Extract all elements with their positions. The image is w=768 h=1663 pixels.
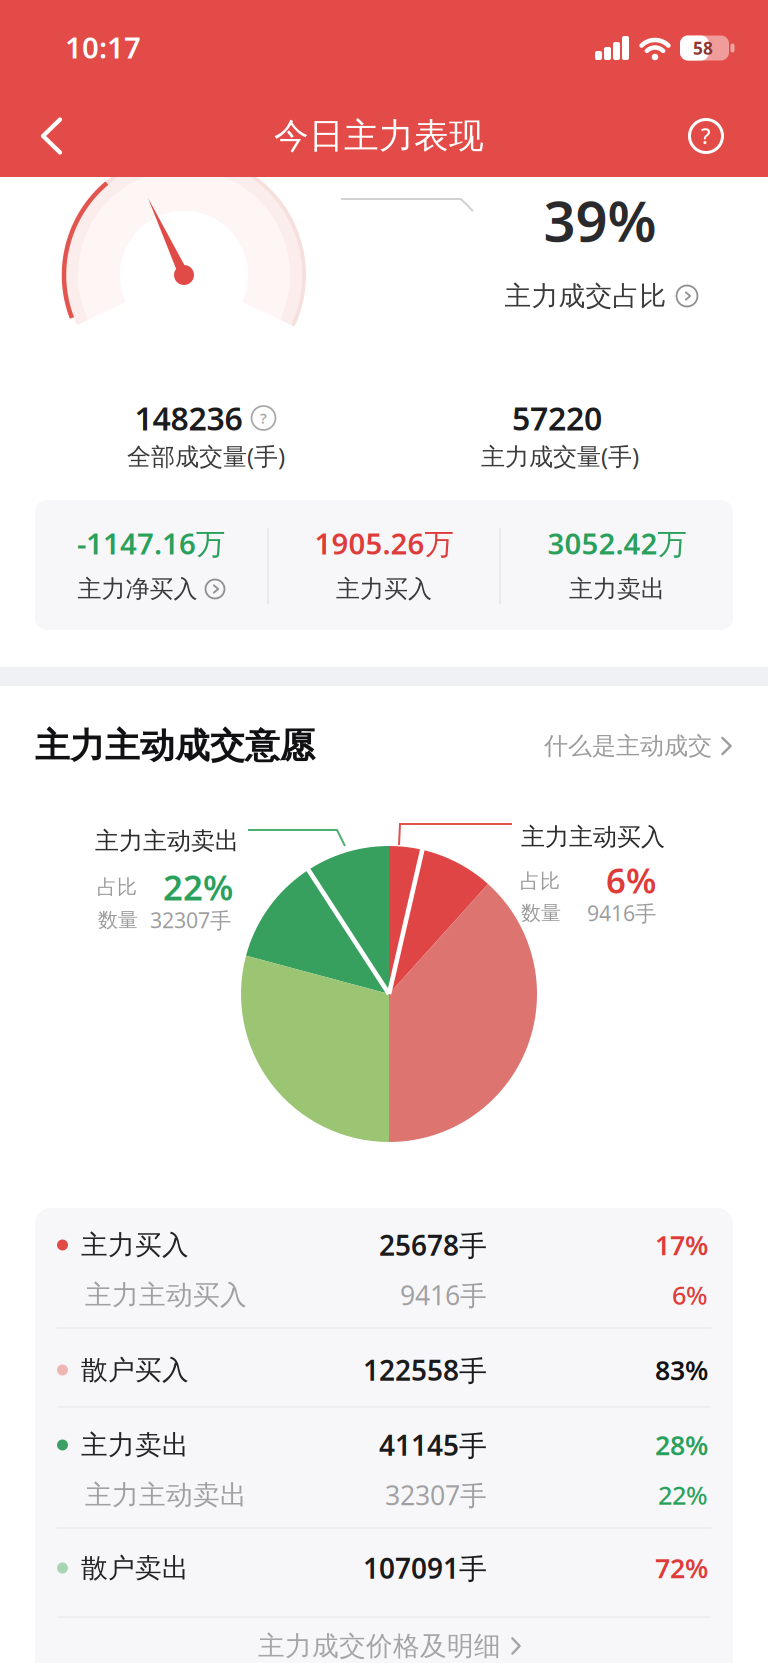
staticText: ?	[260, 408, 267, 428]
staticText: 什么是主动成交	[544, 731, 712, 761]
button[interactable]: 主力成交占比	[504, 280, 697, 312]
button[interactable]: 什么是主动成交	[544, 731, 733, 761]
staticText: 9416手	[400, 1277, 487, 1313]
staticText: 25678手	[379, 1226, 487, 1264]
staticText: 主力成交价格及明细	[258, 1630, 501, 1662]
staticText: 散户买入	[81, 1354, 189, 1386]
staticText: 主力主动成交意愿	[35, 725, 315, 767]
staticText: 28%	[655, 1427, 708, 1463]
staticText: 107091手	[363, 1549, 487, 1587]
staticText: 22%	[163, 864, 233, 910]
staticText: 22%	[658, 1478, 708, 1512]
staticText: 58	[693, 36, 713, 59]
staticText: 6%	[606, 857, 656, 903]
staticText: 主力买入	[81, 1229, 189, 1261]
staticText: ?	[701, 122, 711, 150]
button[interactable]	[40, 116, 64, 155]
staticText: -1147.16万	[77, 523, 225, 562]
staticText: 主力成交占比	[504, 280, 666, 312]
button[interactable]: 148236	[134, 397, 275, 439]
staticText: 3052.42万	[547, 523, 686, 562]
button[interactable]: ?	[689, 119, 722, 152]
staticText: 122558手	[363, 1351, 487, 1389]
button[interactable]: 主力成交价格及明细	[258, 1630, 522, 1662]
staticText: 数量	[521, 901, 561, 925]
staticText: 83%	[655, 1352, 708, 1388]
staticText: 主力成交量(手)	[481, 440, 639, 472]
staticText: 主力买入	[336, 574, 432, 604]
button[interactable]: 主力净买入	[77, 574, 224, 604]
staticText: 主力卖出	[81, 1429, 189, 1461]
staticText: 41145手	[379, 1426, 487, 1464]
staticText: 主力主动卖出	[95, 826, 239, 856]
staticText: 39%	[543, 183, 656, 257]
staticText: 今日主力表现	[274, 115, 484, 157]
staticText: 10:17	[65, 27, 141, 66]
staticText: 17%	[655, 1227, 708, 1263]
staticText: 主力主动卖出	[85, 1479, 247, 1511]
staticText: 散户卖出	[81, 1552, 189, 1584]
staticText: 主力卖出	[569, 574, 665, 604]
staticText: 主力主动买入	[85, 1279, 247, 1311]
staticText: 32307手	[150, 906, 231, 934]
staticText: 1905.26万	[314, 523, 453, 562]
staticText: 占比	[520, 869, 560, 893]
staticText: 6%	[672, 1278, 708, 1312]
staticText: 9416手	[587, 899, 656, 927]
staticText: 32307手	[385, 1477, 487, 1513]
staticText: 全部成交量(手)	[127, 440, 285, 472]
staticText: 72%	[655, 1550, 708, 1586]
staticText: 主力净买入	[77, 574, 197, 604]
staticText: 占比	[97, 875, 137, 899]
staticText: 148236	[134, 397, 242, 439]
staticText: 57220	[512, 397, 602, 439]
staticText: 主力主动买入	[521, 822, 665, 852]
staticText: 数量	[98, 908, 138, 932]
